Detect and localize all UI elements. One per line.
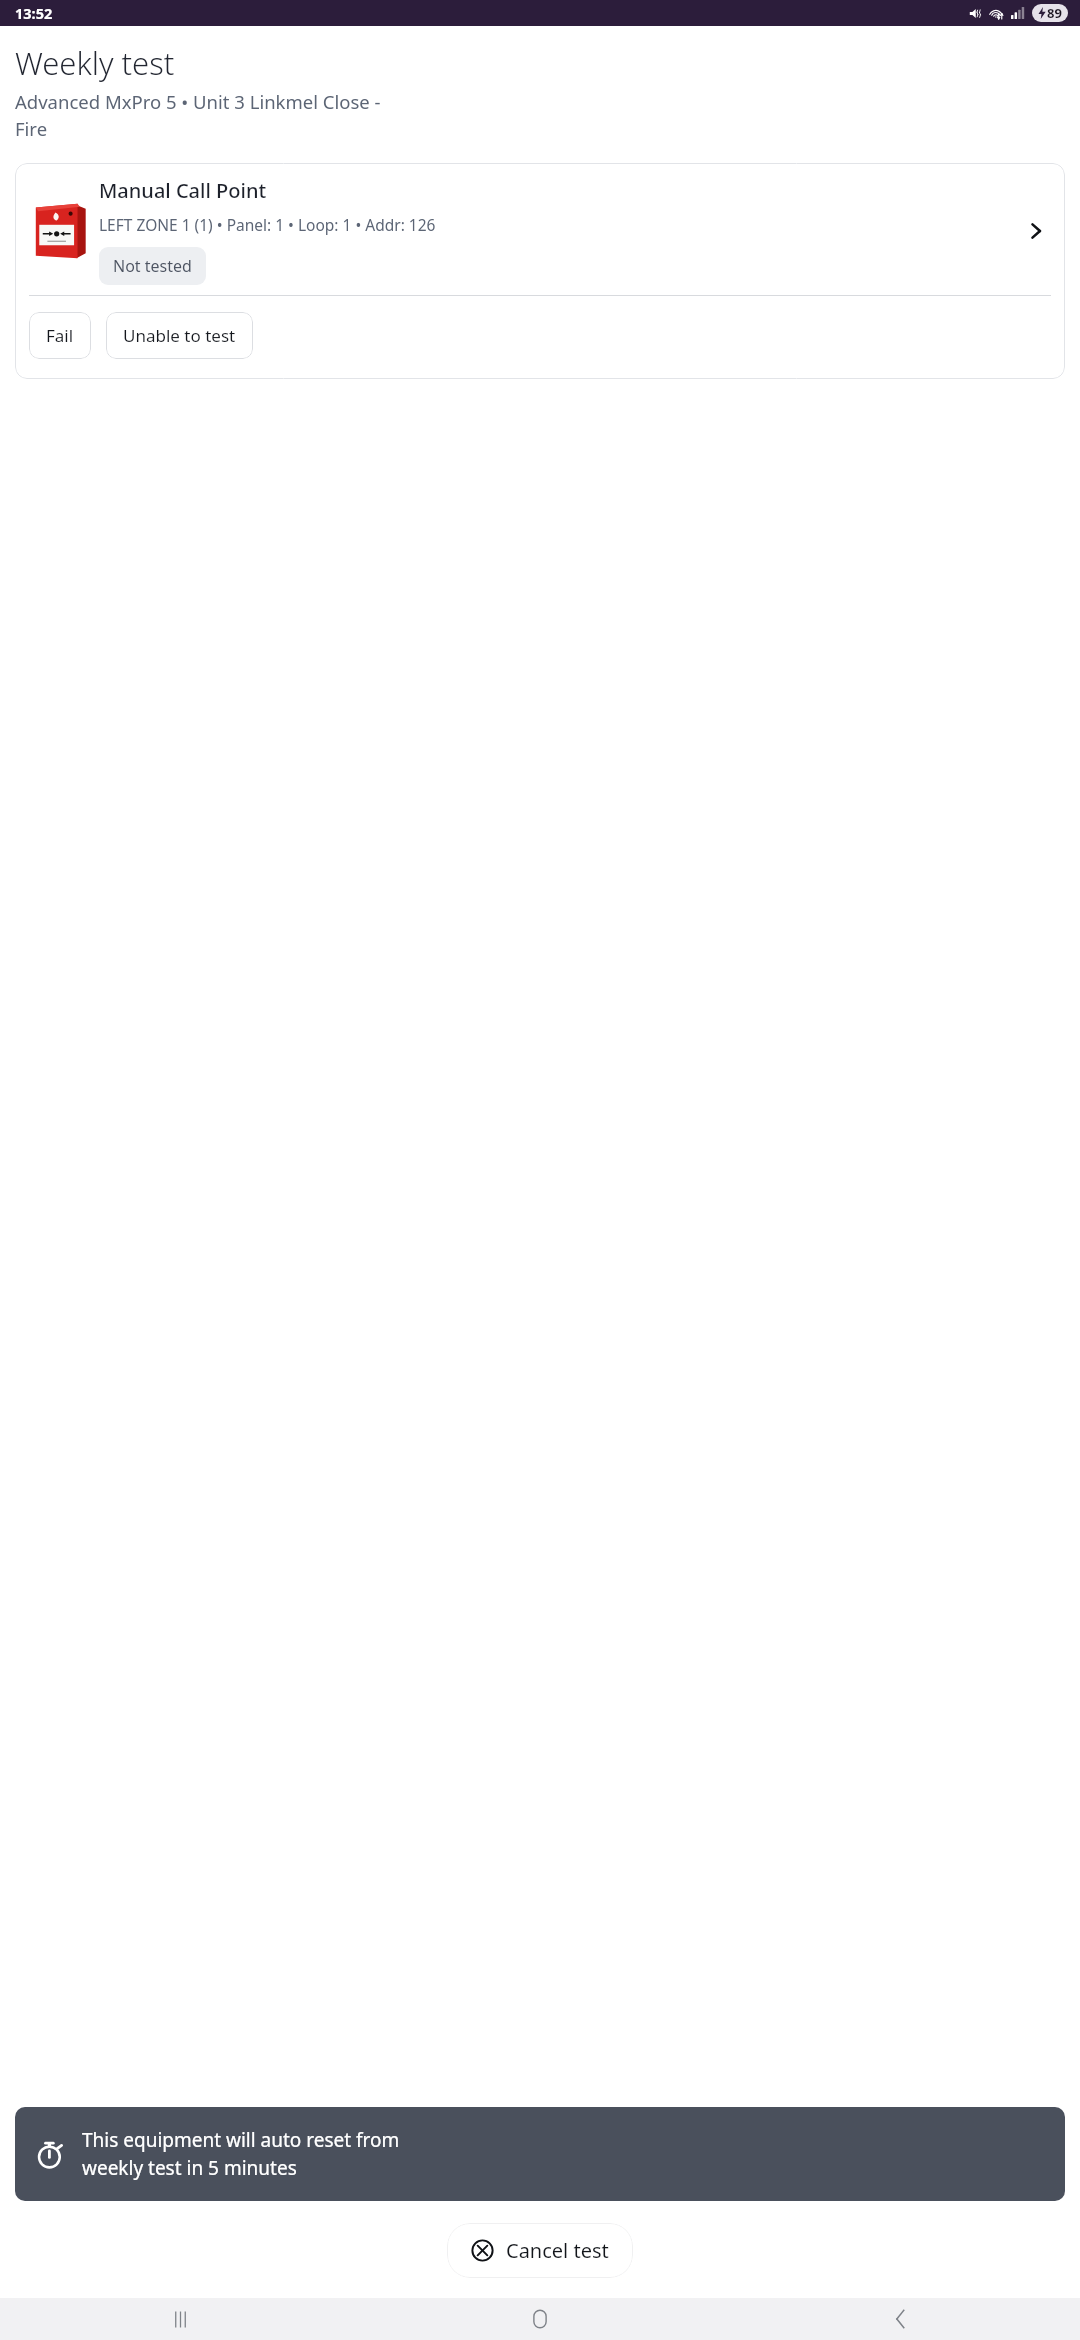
other: Open equipment details [1023, 218, 1049, 244]
button[interactable]: Manual Call Point [15, 163, 1065, 295]
staticText: 89 [1047, 4, 1062, 22]
button[interactable]: Cancel test [447, 2223, 633, 2278]
staticText: Manual Call Point [99, 177, 267, 204]
button[interactable]: Fail [29, 312, 91, 359]
staticText: Not tested [113, 255, 192, 277]
button[interactable]: Unable to test [106, 312, 253, 359]
button[interactable]: Home [510, 2298, 570, 2340]
staticText: 13:52 [15, 3, 53, 23]
staticText: Fail [46, 324, 74, 347]
button[interactable]: Back [870, 2298, 930, 2340]
staticText: Weekly test [15, 42, 175, 84]
button[interactable]: Recent apps [150, 2298, 210, 2340]
staticText: Advanced MxPro 5 • Unit 3 Linkmel Close … [15, 89, 381, 142]
staticText: Cancel test [506, 2237, 609, 2264]
staticText: This equipment will auto reset from week… [82, 2127, 400, 2181]
staticText: Unable to test [123, 324, 236, 347]
staticText: LEFT ZONE 1 (1) • Panel: 1 • Loop: 1 • A… [99, 214, 436, 235]
